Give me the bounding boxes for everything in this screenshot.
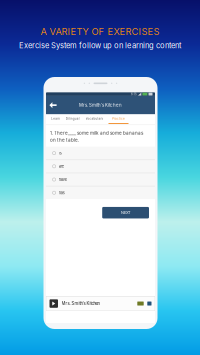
button[interactable]: has <box>46 186 155 199</box>
button[interactable]: Practice <box>107 114 129 125</box>
staticText: 1. There____ some milk and some bananas … <box>50 130 143 143</box>
staticText: have <box>59 177 67 182</box>
staticText: Vocabulary <box>85 117 103 120</box>
staticText: Learn <box>51 117 60 120</box>
staticText: Bilingual <box>66 117 80 120</box>
button[interactable]: Back <box>46 96 60 114</box>
staticText: has <box>59 190 65 195</box>
button[interactable]: Vocabulary <box>81 114 107 125</box>
staticText: is <box>59 151 62 155</box>
staticText: NEXT <box>121 210 130 215</box>
staticText: Practice <box>112 117 125 120</box>
button[interactable]: are <box>46 160 155 172</box>
staticText: Mrs. Smith's Kitchen <box>79 102 122 108</box>
staticText: Exercise System follow up on learning co… <box>19 41 181 50</box>
button[interactable]: NEXT <box>102 207 149 218</box>
staticText: Mrs. Smith's Kitchen <box>62 301 100 306</box>
button[interactable]: Learn <box>47 114 64 125</box>
button[interactable]: Bilingual <box>64 114 81 125</box>
staticText: 8:15 <box>131 92 137 96</box>
staticText: A VARIETY OF EXERCISES <box>40 26 159 37</box>
button[interactable]: is <box>46 147 155 159</box>
staticText: are <box>59 164 64 169</box>
button[interactable]: have <box>46 173 155 186</box>
